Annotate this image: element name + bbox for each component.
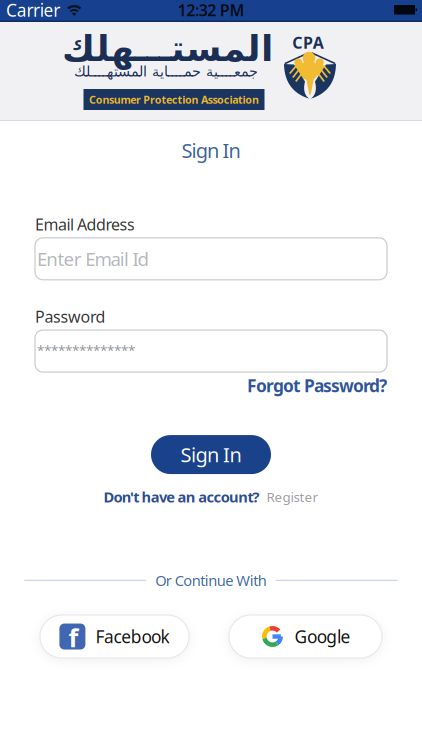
button[interactable]: **************: [35, 330, 387, 372]
staticText: Don't have an account?: [103, 487, 260, 507]
staticText: المستـــهلك: [61, 27, 272, 69]
staticText: 12:32 PM: [177, 0, 244, 21]
button[interactable]: Forgot Password?: [247, 374, 387, 397]
staticText: Sign In: [180, 441, 241, 468]
staticText: **************: [37, 341, 135, 359]
staticText: Register: [267, 488, 319, 506]
staticText: Facebook: [95, 625, 170, 648]
button[interactable]: Google: [229, 615, 382, 658]
staticText: CPA: [292, 32, 324, 53]
staticText: Email Address: [35, 214, 135, 235]
staticText: Enter Email Id: [37, 246, 149, 271]
staticText: Consumer Protection Association: [89, 92, 259, 107]
button[interactable]: Register: [267, 488, 319, 506]
staticText: Forgot Password?: [247, 374, 387, 397]
button[interactable]: Sign In: [151, 435, 271, 474]
staticText: جمعــــية حمــــاية المستهــــلك: [73, 63, 257, 80]
staticText: Carrier: [6, 0, 60, 21]
staticText: Google: [294, 625, 350, 648]
button[interactable]: Enter Email Id: [35, 238, 387, 280]
button[interactable]: f: [40, 615, 189, 658]
staticText: Or Continue With: [155, 571, 267, 590]
staticText: f: [68, 621, 78, 654]
staticText: Sign In: [181, 137, 241, 164]
staticText: Password: [35, 306, 105, 327]
